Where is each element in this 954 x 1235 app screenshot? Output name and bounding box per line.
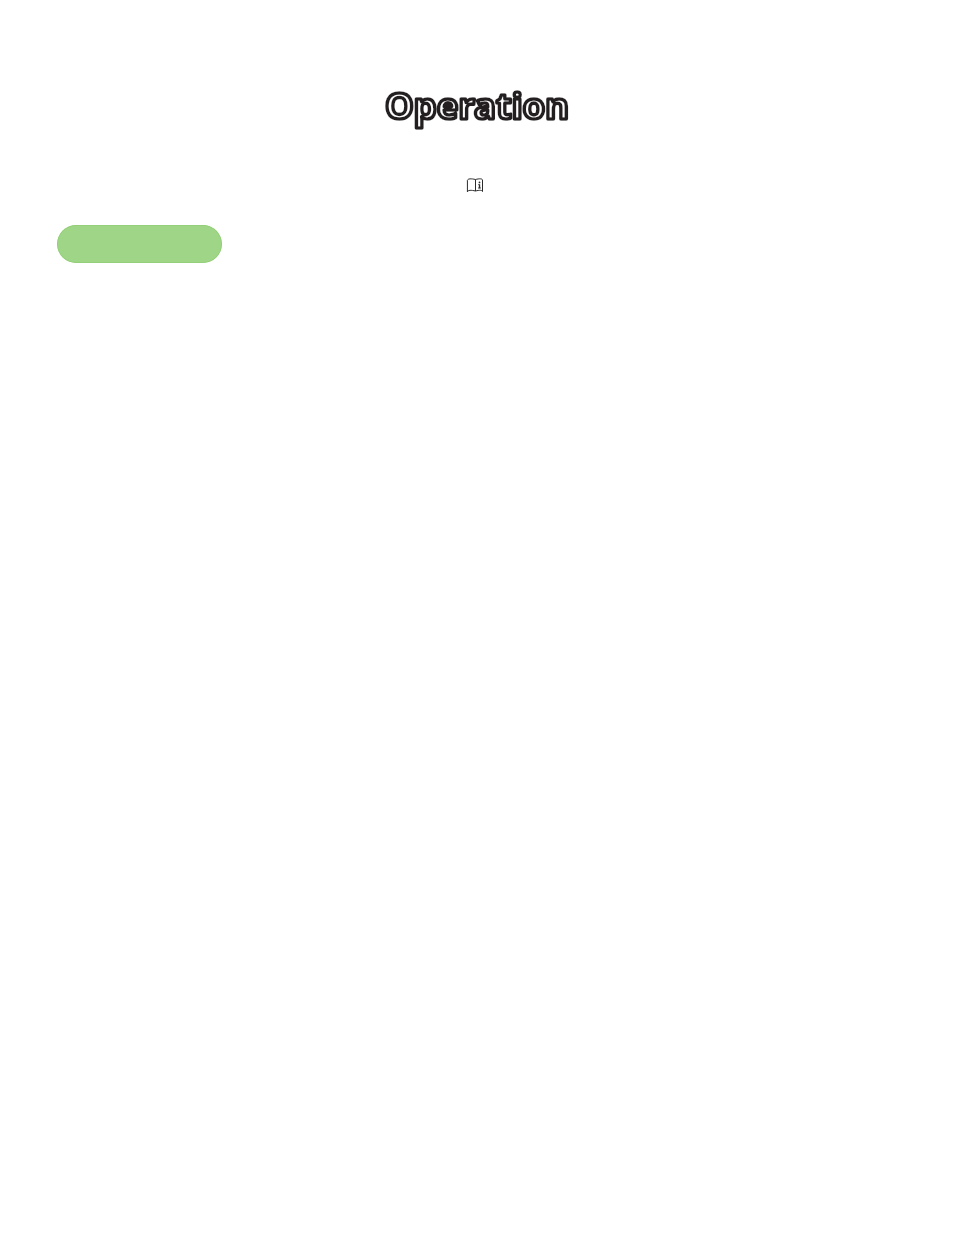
staticText: Operation <box>385 80 569 130</box>
button[interactable] <box>57 225 222 263</box>
staticText: Operation <box>385 80 569 130</box>
button[interactable]: Instruction manual <box>467 178 483 192</box>
